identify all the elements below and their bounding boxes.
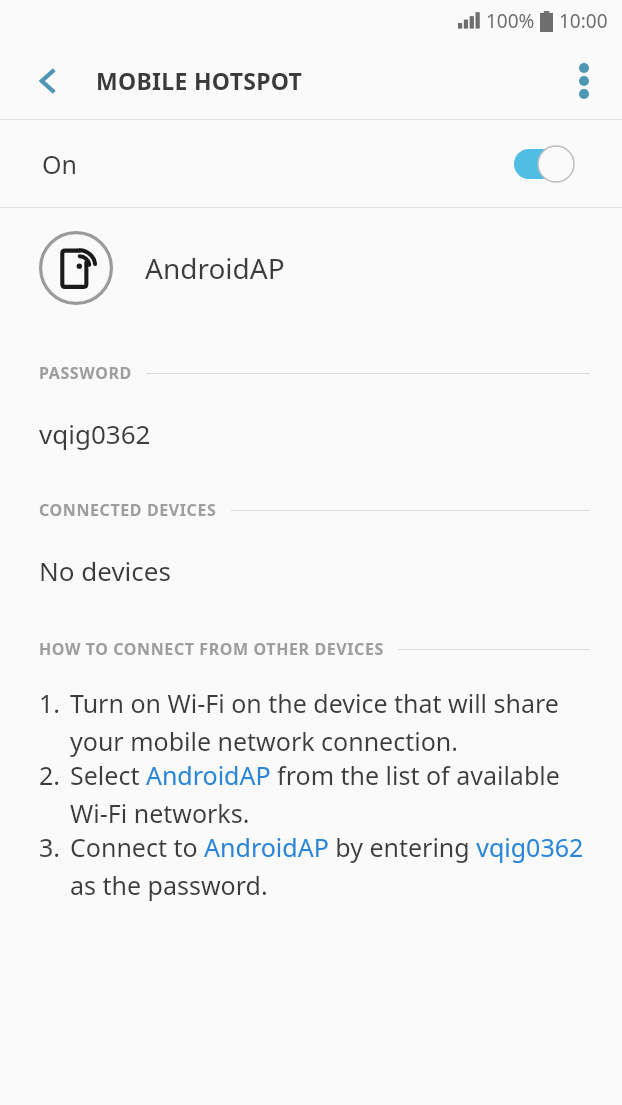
staticText: CONNECTED DEVICES — [39, 499, 217, 521]
staticText: No devices — [39, 553, 171, 588]
staticText: 3. — [39, 830, 70, 864]
button[interactable]: Back — [20, 53, 76, 109]
staticText: Turn on Wi-Fi on the device that will sh… — [70, 686, 600, 758]
staticText: 1. — [39, 686, 70, 720]
button[interactable]: On — [0, 120, 622, 207]
staticText: HOW TO CONNECT FROM OTHER DEVICES — [39, 638, 384, 660]
staticText: 2. — [39, 758, 70, 792]
button[interactable]: More options — [556, 53, 612, 109]
staticText: 10:00 — [559, 8, 608, 34]
staticText: AndroidAP — [145, 249, 285, 287]
staticText: Select AndroidAP from the list of availa… — [70, 758, 600, 830]
button[interactable]: AndroidAP — [0, 208, 622, 328]
staticText: 100% — [486, 8, 535, 34]
staticText: PASSWORD — [39, 362, 132, 384]
staticText: vqig0362 — [39, 416, 151, 451]
staticText: On — [42, 147, 77, 181]
staticText: MOBILE HOTSPOT — [96, 65, 303, 96]
staticText: Connect to AndroidAP by entering vqig036… — [70, 830, 600, 902]
